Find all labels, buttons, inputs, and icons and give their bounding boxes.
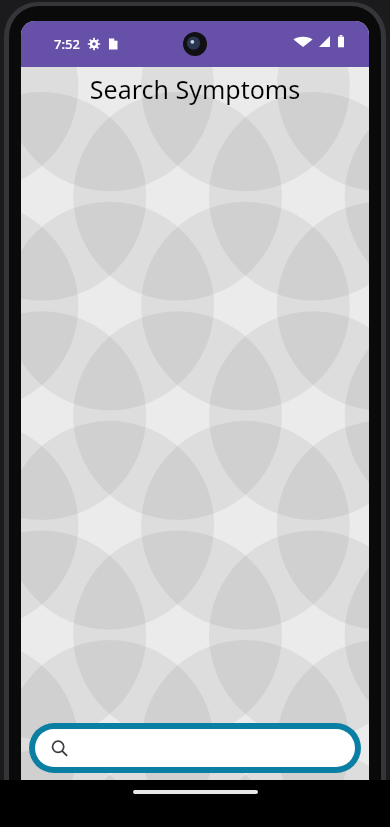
button[interactable] <box>29 723 361 773</box>
staticText: 7:52 <box>54 35 80 53</box>
staticText: Search Symptoms <box>21 72 369 106</box>
